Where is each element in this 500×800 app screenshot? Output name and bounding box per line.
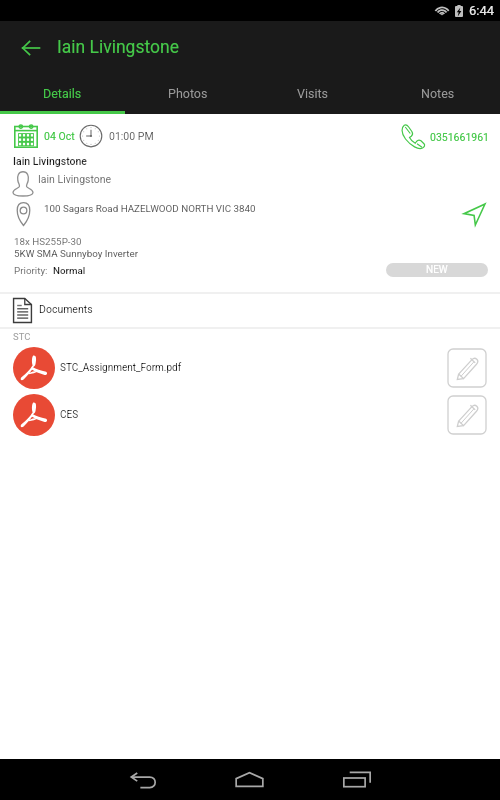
button[interactable]: Recents: [326, 759, 387, 800]
staticText: 100 Sagars Road HAZELWOOD NORTH VIC 3840: [44, 203, 256, 214]
button[interactable]: Edit: [448, 396, 486, 434]
button[interactable]: NEW: [386, 263, 488, 277]
staticText: Documents: [39, 303, 93, 315]
button[interactable]: Back: [113, 759, 174, 800]
button[interactable]: Visits: [250, 74, 375, 111]
staticText: CES: [60, 409, 79, 421]
button[interactable]: Photos: [125, 74, 250, 111]
staticText: 0351661961: [430, 131, 490, 143]
staticText: Iain Livingstone: [57, 37, 179, 58]
button[interactable]: Home: [219, 759, 280, 800]
staticText: NEW: [426, 264, 448, 276]
staticText: Visits: [297, 86, 329, 101]
staticText: 5KW SMA Sunnyboy Inverter: [14, 248, 139, 259]
staticText: STC: [13, 331, 31, 342]
button[interactable]: Details: [0, 74, 125, 111]
staticText: Priority:: [14, 265, 48, 276]
button[interactable]: Navigate: [456, 202, 492, 226]
staticText: Photos: [168, 86, 208, 101]
button[interactable]: CES: [0, 391, 500, 438]
button[interactable]: STC_Assignment_Form.pdf: [0, 344, 500, 391]
button[interactable]: Documents: [0, 294, 500, 327]
button[interactable]: Edit: [448, 349, 486, 387]
staticText: STC_Assignment_Form.pdf: [60, 362, 182, 374]
staticText: Notes: [421, 86, 455, 101]
button[interactable]: Back: [14, 31, 48, 65]
staticText: Iain Livingstone: [13, 155, 87, 167]
staticText: 01:00 PM: [109, 130, 154, 142]
staticText: Normal: [53, 265, 86, 276]
staticText: Details: [43, 86, 82, 101]
staticText: Iain Livingstone: [38, 173, 112, 185]
staticText: 18x HS255P-30: [14, 236, 82, 247]
staticText: 04 Oct: [44, 130, 75, 142]
button[interactable]: 0351661961: [399, 124, 500, 149]
button[interactable]: Notes: [375, 74, 500, 111]
staticText: 6:44: [469, 3, 495, 18]
